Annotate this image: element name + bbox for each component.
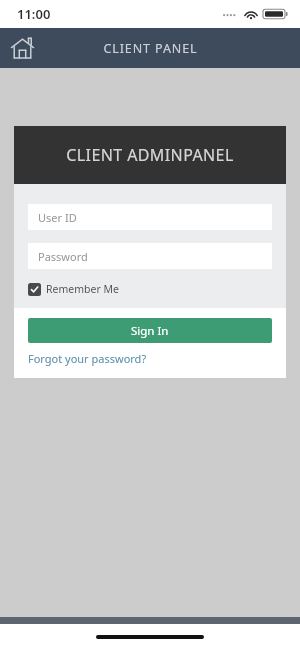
staticText: Sign In [131,323,169,339]
staticText: CLIENT ADMINPANEL [66,144,234,166]
button[interactable]: Remember Me [28,280,119,298]
staticText: Forgot your password? [28,351,147,366]
button[interactable]: Password [28,243,272,269]
button[interactable]: Sign In [28,318,272,343]
staticText: CLIENT PANEL [103,40,198,57]
staticText: Password [38,249,88,264]
staticText: User ID [38,210,77,225]
button[interactable]: User ID [28,204,272,230]
button[interactable]: Forgot your password? [28,351,147,366]
staticText: 11:00 [17,5,51,23]
staticText: Remember Me [46,282,119,296]
button[interactable]: Home [0,28,44,68]
